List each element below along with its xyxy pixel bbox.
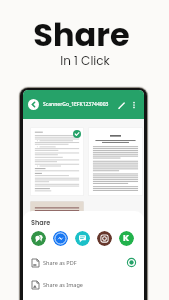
button[interactable]: Messages: [75, 231, 90, 246]
button[interactable]: [30, 127, 84, 196]
staticText: Share: [33, 12, 130, 57]
button[interactable]: Instagram: [97, 231, 112, 246]
button[interactable]: Share as Image: [31, 278, 136, 290]
staticText: Share as PDF: [43, 259, 77, 266]
button[interactable]: Back: [28, 99, 39, 110]
button[interactable]: Kakao: [119, 231, 134, 246]
staticText: Share: [31, 218, 51, 227]
button[interactable]: Messenger: [53, 231, 68, 246]
button[interactable]: [30, 201, 84, 270]
button[interactable]: More options: [128, 99, 140, 111]
staticText: ScannerGo_1EFK123744003: [43, 101, 109, 108]
button[interactable]: Edit: [115, 99, 127, 111]
button[interactable]: WhatsApp: [31, 231, 46, 246]
button[interactable]: Share as PDF: [31, 256, 136, 268]
staticText: K: [123, 232, 130, 245]
staticText: In 1 Click: [60, 52, 110, 69]
staticText: Share as Image: [43, 281, 83, 288]
button[interactable]: [88, 127, 143, 196]
